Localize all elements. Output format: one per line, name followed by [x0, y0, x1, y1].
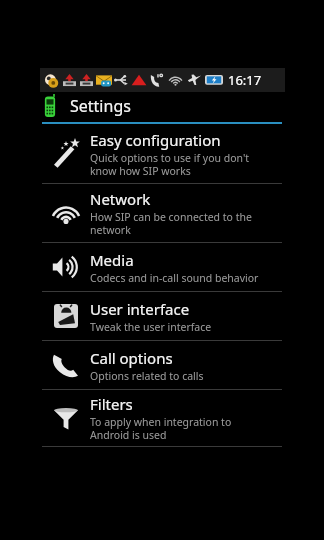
staticText: Settings [70, 95, 131, 117]
staticText: Media [90, 250, 134, 270]
button[interactable]: Network [0, 184, 324, 242]
staticText: Tweak the user interface [90, 320, 212, 334]
staticText: Filters [90, 394, 133, 414]
staticText: To apply when integration to Android is … [90, 415, 232, 442]
staticText: Options related to calls [90, 369, 204, 383]
staticText: Easy configuration [90, 130, 221, 150]
button[interactable]: User interface [0, 292, 324, 340]
staticText: 16:17 [228, 71, 262, 89]
staticText: Codecs and in-call sound behavior [90, 271, 259, 285]
button[interactable]: Easy configuration [0, 124, 324, 183]
staticText: User interface [90, 299, 190, 319]
staticText: Call options [90, 348, 173, 368]
staticText: How SIP can be connected to the network [90, 210, 252, 237]
button[interactable]: Filters [0, 390, 324, 446]
button[interactable]: Call options [0, 341, 324, 389]
staticText: Network [90, 189, 151, 209]
button[interactable]: Media [0, 243, 324, 291]
staticText: Quick options to use if you don't know h… [90, 151, 250, 178]
